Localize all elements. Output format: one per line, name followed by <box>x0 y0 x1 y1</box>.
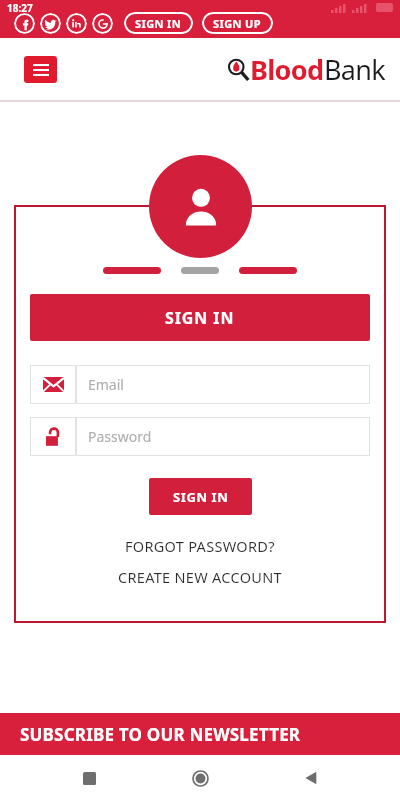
button[interactable]: Account avatar <box>149 155 252 258</box>
button[interactable]: Menu <box>24 56 57 83</box>
button[interactable]: Email <box>30 365 370 404</box>
button[interactable]: SIGN UP <box>202 12 273 34</box>
button[interactable]: Blood <box>225 51 386 88</box>
button[interactable]: Password <box>30 417 370 456</box>
staticText: SIGN IN <box>135 16 182 31</box>
button[interactable]: SIGN IN <box>30 294 370 341</box>
button[interactable]: Twitter <box>40 13 61 34</box>
staticText: SIGN UP <box>213 16 262 31</box>
button[interactable]: CREATE NEW ACCOUNT <box>108 564 292 590</box>
staticText: Email <box>88 375 124 394</box>
button[interactable]: Google <box>92 13 113 34</box>
staticText: SIGN IN <box>173 488 229 506</box>
staticText: Password <box>88 427 152 446</box>
staticText: FORGOT PASSWORD? <box>125 536 275 556</box>
staticText: Blood <box>250 51 324 88</box>
button[interactable]: Back <box>289 756 333 800</box>
button[interactable]: Facebook <box>14 13 35 34</box>
button[interactable]: Recent apps <box>67 756 111 800</box>
button[interactable]: FORGOT PASSWORD? <box>115 533 285 559</box>
button[interactable]: SUBSCRIBE TO OUR NEWSLETTER <box>0 713 400 755</box>
button[interactable]: Home <box>178 756 222 800</box>
staticText: Bank <box>324 51 386 88</box>
button[interactable]: LinkedIn <box>66 13 87 34</box>
staticText: SUBSCRIBE TO OUR NEWSLETTER <box>20 723 301 746</box>
staticText: SIGN IN <box>165 307 235 329</box>
staticText: 18:27 <box>7 1 33 15</box>
staticText: CREATE NEW ACCOUNT <box>118 567 282 587</box>
button[interactable]: SIGN IN <box>149 478 252 515</box>
button[interactable]: SIGN IN <box>124 12 193 34</box>
